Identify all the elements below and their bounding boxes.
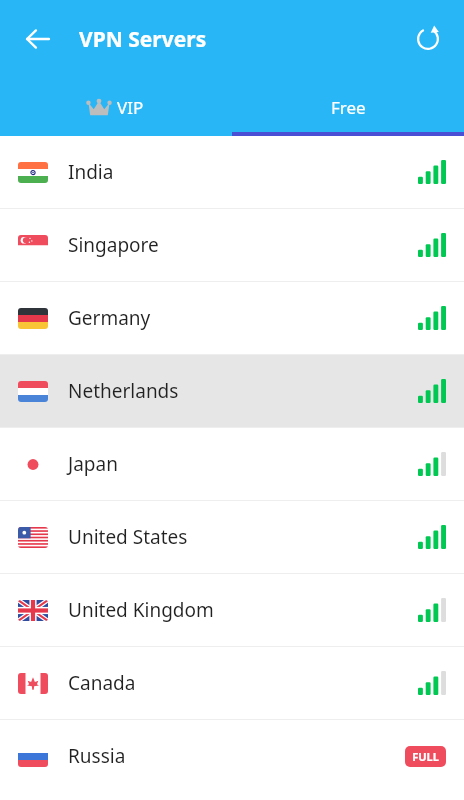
button[interactable]: United States: [0, 501, 464, 573]
button[interactable]: Free: [232, 78, 464, 136]
button[interactable]: India: [0, 136, 464, 208]
button[interactable]: Germany: [0, 282, 464, 354]
button[interactable]: Japan: [0, 428, 464, 500]
staticText: Japan: [68, 451, 418, 477]
staticText: Germany: [68, 305, 418, 331]
staticText: United Kingdom: [68, 597, 418, 623]
staticText: FULL: [412, 749, 439, 764]
button[interactable]: Canada: [0, 647, 464, 719]
button[interactable]: Back: [14, 15, 62, 63]
staticText: Netherlands: [68, 378, 418, 404]
button[interactable]: Netherlands: [0, 355, 464, 427]
staticText: India: [68, 159, 418, 185]
button[interactable]: Singapore: [0, 209, 464, 281]
staticText: Singapore: [68, 232, 418, 258]
staticText: United States: [68, 524, 418, 550]
button[interactable]: VIP: [0, 78, 232, 136]
staticText: VIP: [117, 96, 144, 119]
button[interactable]: United Kingdom: [0, 574, 464, 646]
button[interactable]: Russia: [0, 720, 464, 792]
staticText: VPN Servers: [79, 25, 207, 54]
staticText: Canada: [68, 670, 418, 696]
button[interactable]: Refresh: [404, 15, 452, 63]
staticText: Free: [331, 96, 366, 119]
staticText: Russia: [68, 743, 405, 769]
